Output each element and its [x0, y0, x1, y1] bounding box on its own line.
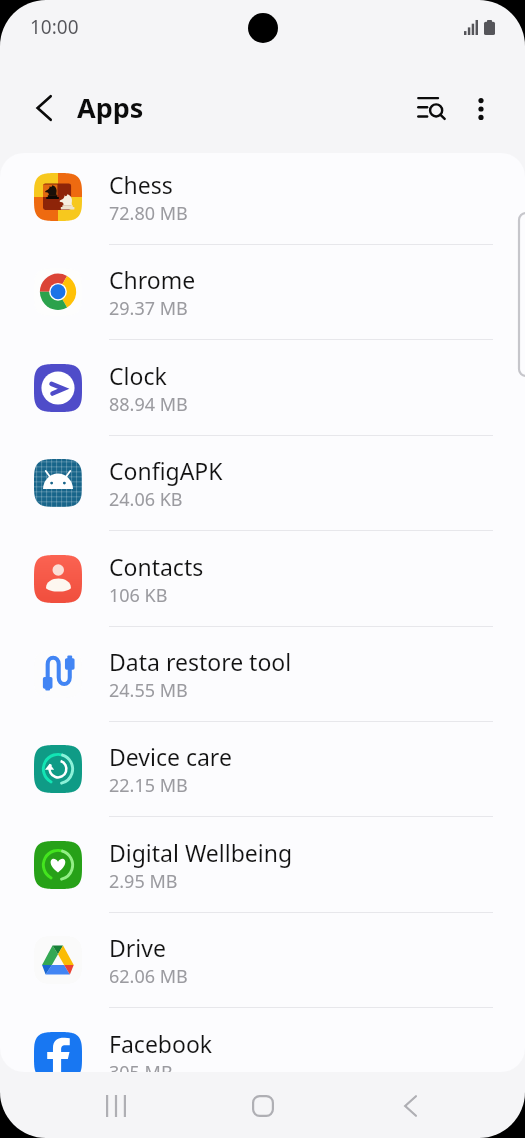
staticText: 72.80 MB: [109, 201, 188, 226]
staticText: 24.55 MB: [109, 678, 188, 703]
staticText: 305 MB: [109, 1060, 173, 1072]
staticText: ConfigAPK: [109, 455, 223, 486]
button[interactable]: Home: [235, 1078, 291, 1134]
button[interactable]: Recent apps: [88, 1078, 144, 1134]
staticText: 106 KB: [109, 583, 168, 608]
button[interactable]: Back: [382, 1078, 438, 1134]
button[interactable]: Clock: [0, 341, 525, 436]
button[interactable]: Chrome: [0, 245, 525, 340]
button[interactable]: ConfigAPK: [0, 436, 525, 531]
button[interactable]: Digital Wellbeing: [0, 818, 525, 913]
staticText: Data restore tool: [109, 646, 292, 677]
staticText: Chess: [109, 169, 173, 200]
staticText: 10:00: [30, 14, 79, 40]
staticText: 2.95 MB: [109, 869, 178, 894]
button[interactable]: Contacts: [0, 532, 525, 627]
staticText: Device care: [109, 741, 232, 772]
staticText: Chrome: [109, 264, 196, 295]
staticText: Digital Wellbeing: [109, 837, 293, 868]
button[interactable]: More options: [459, 87, 503, 131]
button[interactable]: Drive: [0, 913, 525, 1008]
button[interactable]: Data restore tool: [0, 627, 525, 722]
staticText: Facebook: [109, 1028, 213, 1059]
button[interactable]: Chess: [0, 153, 525, 245]
staticText: 22.15 MB: [109, 773, 188, 798]
staticText: Drive: [109, 932, 166, 963]
staticText: Clock: [109, 360, 167, 391]
button[interactable]: Search: [409, 85, 457, 133]
staticText: 62.06 MB: [109, 964, 188, 989]
button[interactable]: Facebook: [0, 1009, 525, 1072]
button[interactable]: Back: [22, 86, 66, 130]
staticText: 29.37 MB: [109, 296, 188, 321]
staticText: 88.94 MB: [109, 392, 188, 417]
staticText: Contacts: [109, 551, 204, 582]
staticText: 24.06 KB: [109, 487, 183, 512]
button[interactable]: Device care: [0, 722, 525, 817]
staticText: Apps: [77, 89, 144, 126]
